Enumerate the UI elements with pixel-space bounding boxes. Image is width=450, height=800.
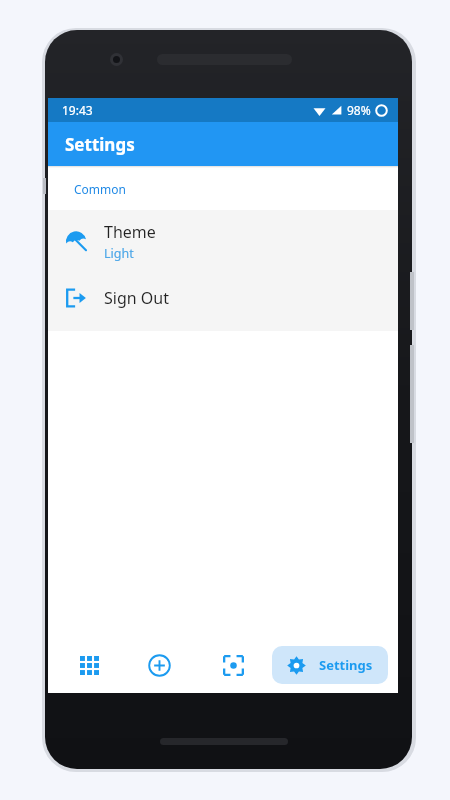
button[interactable]: Theme [48, 210, 398, 272]
staticText: Theme [104, 221, 156, 243]
staticText: Common [74, 181, 126, 197]
button[interactable]: Settings [272, 646, 388, 684]
staticText: 98% [347, 102, 371, 118]
staticText: 19:43 [62, 102, 93, 118]
button[interactable]: Sign Out [48, 272, 398, 323]
button[interactable]: Add [122, 643, 196, 687]
button[interactable]: Scan [196, 643, 270, 687]
staticText: Settings [319, 656, 373, 674]
staticText: Sign Out [104, 287, 169, 309]
staticText: Settings [65, 133, 135, 156]
staticText: Light [104, 245, 134, 262]
button[interactable]: Apps [56, 643, 122, 687]
